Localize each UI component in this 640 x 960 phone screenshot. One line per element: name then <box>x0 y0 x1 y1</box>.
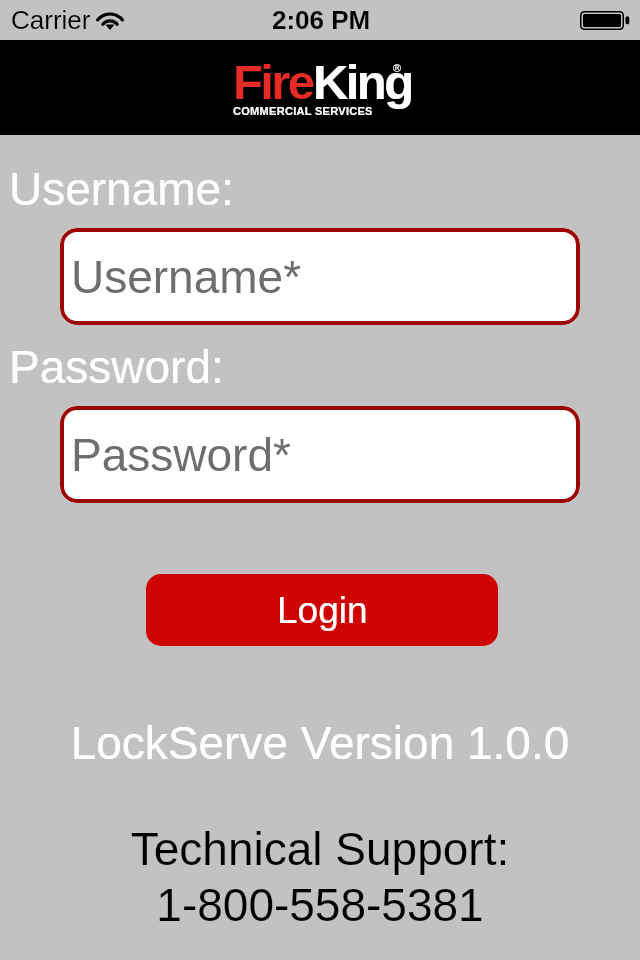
staticText: Password* <box>71 429 291 480</box>
staticText: Password: <box>9 341 224 392</box>
staticText: Technical Support: 1-800-558-5381 <box>0 823 640 931</box>
staticText: 2:06 PM <box>272 5 371 34</box>
button[interactable]: Login <box>146 574 498 646</box>
staticText: King <box>313 55 412 110</box>
staticText: LockServe Version 1.0.0 <box>0 717 640 768</box>
button[interactable]: Password* <box>60 406 580 503</box>
button[interactable]: Username* <box>60 228 580 325</box>
staticText: Username: <box>9 163 234 214</box>
staticText: Carrier <box>11 5 91 34</box>
other: Battery full <box>580 11 630 30</box>
staticText: Fire <box>233 55 313 110</box>
other: Wi-Fi signal <box>97 10 123 30</box>
staticText: ® <box>393 62 402 74</box>
staticText: Login <box>277 590 368 631</box>
staticText: Username* <box>71 251 302 302</box>
staticText: COMMERCIAL SERVICES <box>233 105 373 117</box>
